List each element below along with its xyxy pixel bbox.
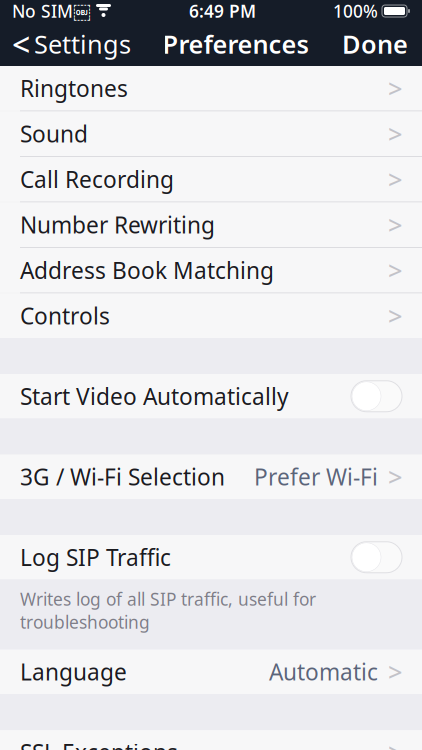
staticText: > <box>388 735 402 750</box>
staticText: > <box>388 162 402 196</box>
staticText: Controls <box>20 301 110 331</box>
staticText: Done <box>342 27 408 61</box>
staticText: Language <box>20 657 127 687</box>
staticText: > <box>388 208 402 241</box>
staticText: No SIM <box>12 0 73 22</box>
staticText: Preferences <box>162 27 308 61</box>
button[interactable]: Start Video Automatically <box>0 374 422 418</box>
button[interactable]: Controls <box>0 293 422 338</box>
staticText: Address Book Matching <box>20 255 274 285</box>
button[interactable]: Done <box>328 22 422 66</box>
staticText: > <box>388 299 402 332</box>
staticText: > <box>388 655 402 689</box>
button[interactable]: Ringtones <box>0 66 422 110</box>
staticText: Number Rewriting <box>20 210 215 240</box>
button[interactable]: < <box>0 22 143 66</box>
button[interactable]: 3G / Wi-Fi Selection <box>0 454 422 499</box>
button[interactable]: Log SIP Traffic <box>0 535 422 579</box>
button[interactable]: Language <box>0 649 422 694</box>
staticText: 6:49 PM <box>189 0 256 22</box>
staticText: Writes log of all SIP traffic, useful fo… <box>20 587 316 633</box>
button[interactable]: Sound <box>0 111 422 156</box>
staticText: 100% <box>333 0 378 22</box>
staticText: 3G / Wi-Fi Selection <box>20 462 225 492</box>
staticText: < <box>12 23 30 65</box>
staticText: Ringtones <box>20 73 128 103</box>
staticText: ￼ <box>73 0 90 22</box>
staticText: Log SIP Traffic <box>20 542 171 572</box>
staticText: > <box>388 117 402 150</box>
staticText: SSL Exceptions <box>20 737 178 750</box>
staticText: > <box>388 253 402 287</box>
button[interactable]: Address Book Matching <box>0 248 422 292</box>
staticText: > <box>388 71 402 105</box>
button[interactable]: SSL Exceptions <box>0 730 422 750</box>
staticText: Settings <box>34 27 131 61</box>
staticText: Start Video Automatically <box>20 381 289 411</box>
staticText: > <box>388 460 402 493</box>
button[interactable]: Number Rewriting <box>0 202 422 247</box>
staticText: Automatic <box>269 657 378 687</box>
staticText: Prefer Wi-Fi <box>254 462 378 492</box>
button[interactable]: Call Recording <box>0 157 422 201</box>
staticText: Call Recording <box>20 164 174 194</box>
staticText: Sound <box>20 119 88 149</box>
